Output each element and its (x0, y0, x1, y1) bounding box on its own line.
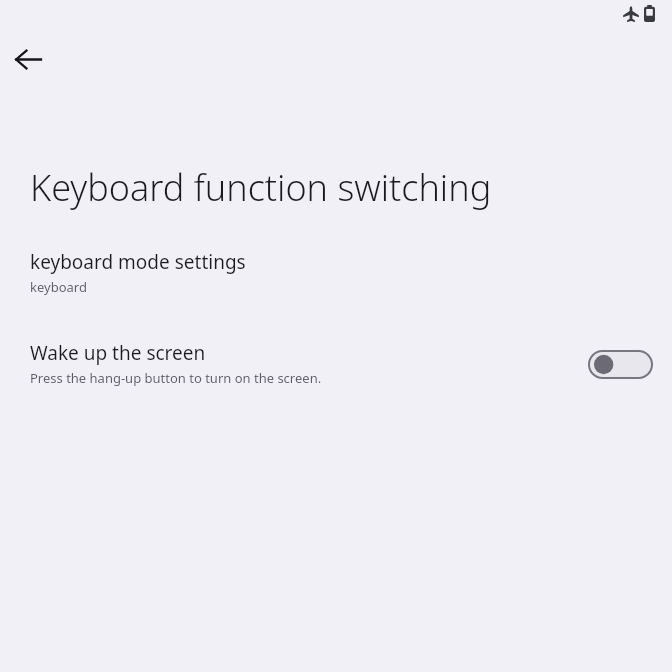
staticText: keyboard (30, 278, 87, 296)
staticText: Keyboard function switching (30, 163, 492, 212)
staticText: Wake up the screen (30, 340, 206, 366)
staticText: keyboard mode settings (30, 249, 246, 275)
button[interactable]: Wake up the screen, off (588, 345, 653, 383)
staticText: Press the hang-up button to turn on the … (30, 369, 322, 387)
button[interactable]: keyboard mode settings (0, 249, 672, 296)
button[interactable]: Back (6, 37, 50, 81)
button[interactable]: Wake up the screen (0, 340, 672, 387)
